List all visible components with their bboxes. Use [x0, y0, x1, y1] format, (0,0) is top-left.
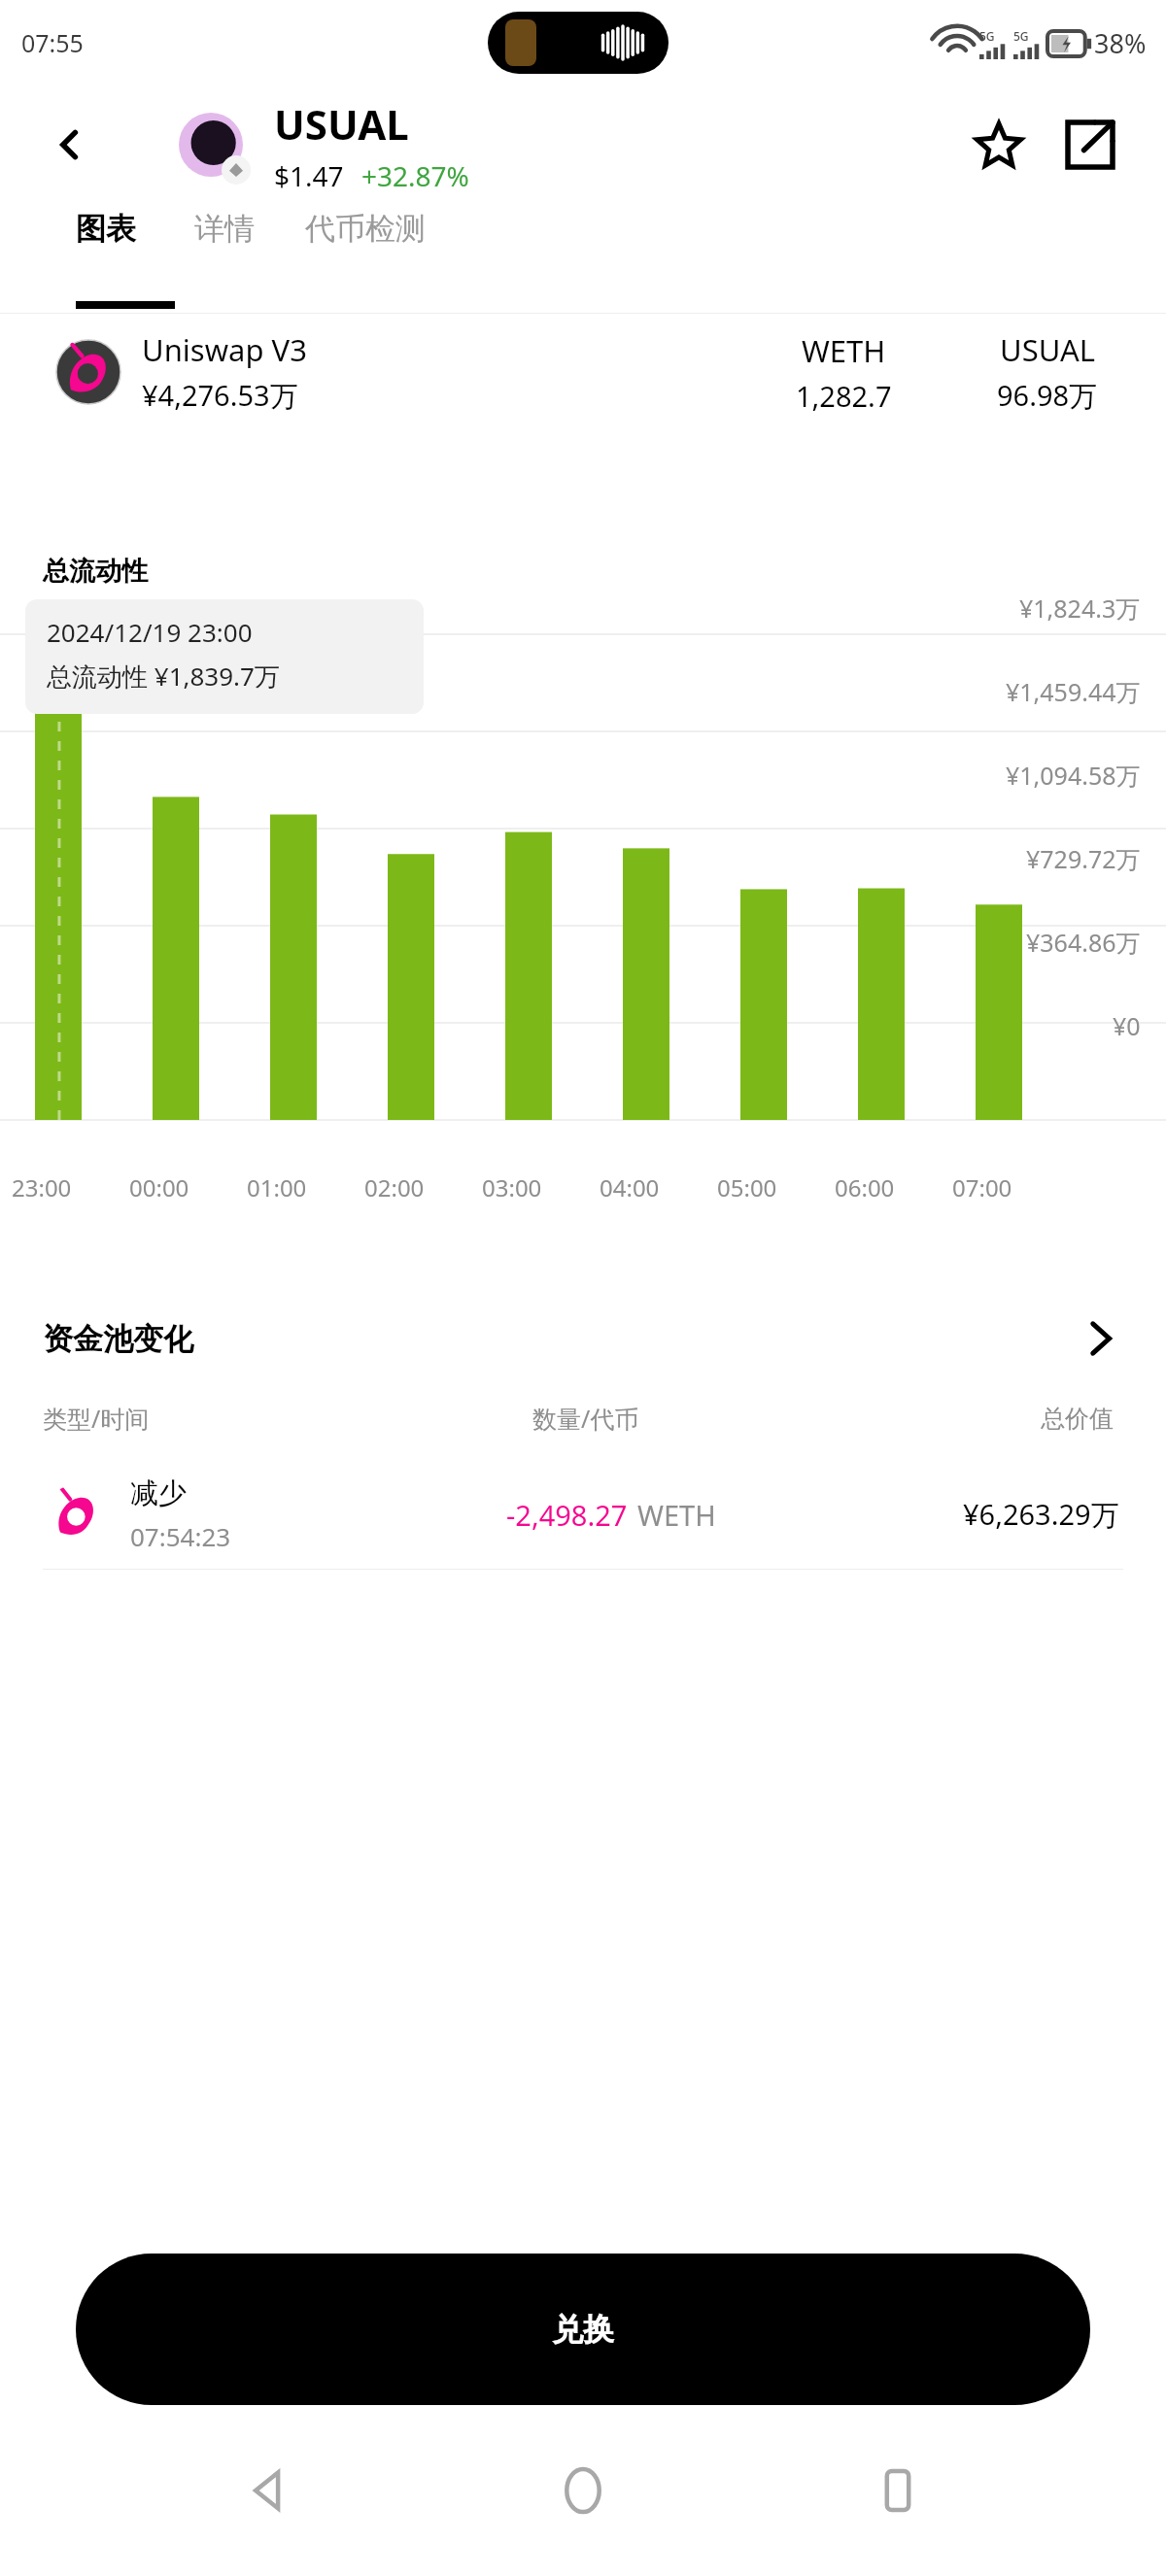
staticText: ¥364.86万: [1026, 926, 1141, 959]
staticText: 04:00: [600, 1171, 660, 1203]
button[interactable]: Back: [222, 2444, 315, 2537]
staticText: 总价值: [1041, 1404, 1114, 1434]
staticText: 05:00: [717, 1171, 777, 1203]
staticText: 代币检测: [305, 210, 426, 248]
staticText: $1.47: [274, 157, 344, 194]
button[interactable]: Recent apps: [851, 2444, 944, 2537]
staticText: 03:00: [482, 1171, 542, 1203]
button[interactable]: 图表: [76, 210, 144, 248]
staticText: 图表: [76, 210, 136, 248]
staticText: ¥0: [1113, 1009, 1141, 1042]
staticText: 07:00: [952, 1171, 1012, 1203]
staticText: ¥1,459.44万: [1006, 675, 1141, 708]
staticText: 兑换: [552, 2310, 614, 2349]
staticText: 23:00: [12, 1171, 72, 1203]
staticText: ¥1,824.3万: [1019, 592, 1141, 625]
button[interactable]: Back: [39, 114, 101, 176]
staticText: ¥4,276.53万: [142, 376, 298, 415]
staticText: 总流动性: [43, 555, 148, 588]
staticText: 类型/时间: [43, 1402, 150, 1435]
staticText: 07:55: [21, 26, 84, 59]
staticText: 数量/代币: [532, 1402, 639, 1435]
staticText: Uniswap V3: [142, 329, 307, 370]
staticText: +32.87%: [361, 157, 469, 194]
staticText: 总流动性 ¥1,839.7万: [47, 659, 280, 694]
button[interactable]: Favorite: [964, 110, 1034, 180]
button[interactable]: 详情: [194, 210, 255, 248]
staticText: 06:00: [835, 1171, 895, 1203]
staticText: ¥6,263.29万: [963, 1495, 1119, 1534]
staticText: 5G: [1013, 28, 1029, 44]
button[interactable]: 资金池变化: [0, 1297, 1166, 1380]
staticText: 07:54:23: [130, 1519, 231, 1553]
staticText: 2024/12/19 23:00: [47, 615, 253, 649]
staticText: 96.98万: [997, 376, 1098, 415]
staticText: USUAL: [1000, 329, 1096, 370]
staticText: USUAL: [274, 96, 409, 152]
staticText: 1,282.7: [796, 377, 892, 415]
staticText: WETH: [802, 330, 886, 371]
staticText: 减少: [130, 1475, 187, 1511]
button[interactable]: Uniswap V3: [0, 314, 1166, 430]
staticText: 01:00: [247, 1171, 307, 1203]
staticText: 详情: [194, 210, 255, 248]
button[interactable]: Share: [1055, 110, 1125, 180]
staticText: 资金池变化: [43, 1320, 193, 1358]
staticText: ¥729.72万: [1026, 842, 1141, 875]
staticText: 02:00: [364, 1171, 425, 1203]
staticText: WETH: [637, 1496, 716, 1534]
staticText: 00:00: [129, 1171, 189, 1203]
button[interactable]: 减少: [0, 1460, 1166, 1569]
staticText: 38%: [1094, 25, 1147, 61]
button[interactable]: 兑换: [76, 2254, 1090, 2405]
staticText: ¥1,094.58万: [1006, 759, 1141, 792]
staticText: 5G: [979, 28, 995, 44]
button[interactable]: 代币检测: [305, 210, 426, 248]
button[interactable]: Home: [536, 2444, 630, 2537]
staticText: -2,498.27: [506, 1496, 628, 1534]
